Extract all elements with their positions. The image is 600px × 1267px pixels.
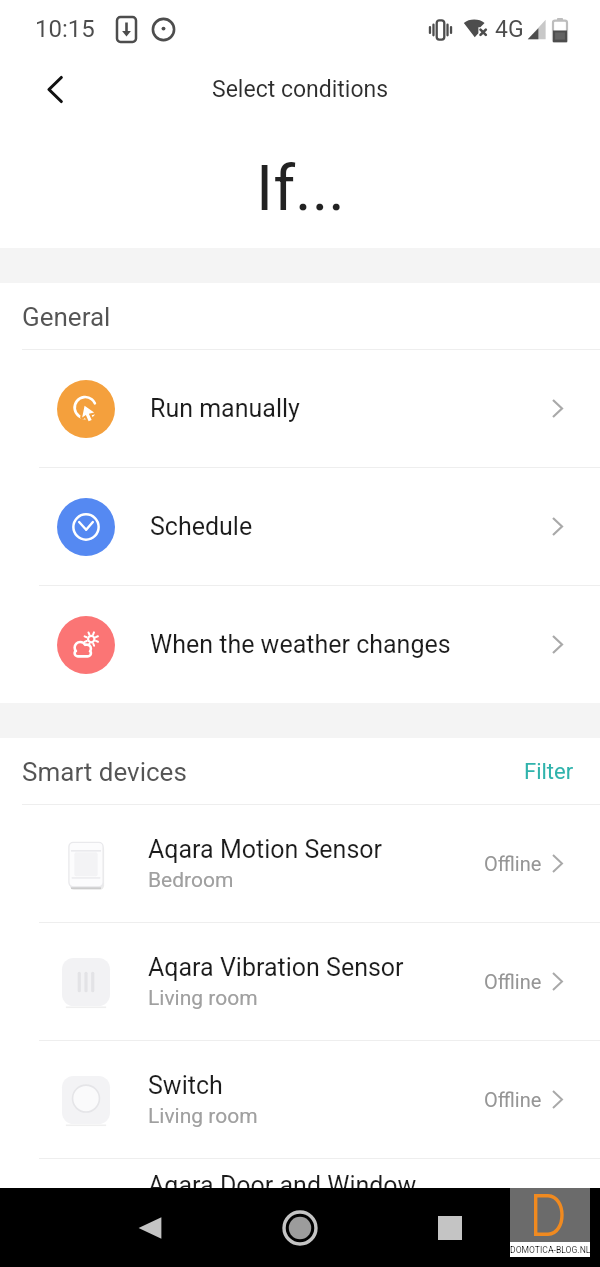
staticText: Run manually <box>150 394 300 423</box>
button[interactable]: Back <box>118 1196 182 1260</box>
staticText: Schedule <box>150 512 253 541</box>
staticText: Bedroom <box>148 868 234 893</box>
button[interactable]: Switch <box>0 1041 600 1158</box>
button[interactable]: Back <box>28 62 82 116</box>
staticText: Living room <box>148 1104 258 1129</box>
button[interactable]: Aqara Vibration Sensor <box>0 923 600 1040</box>
button[interactable]: Recent apps <box>418 1196 482 1260</box>
staticText: If... <box>256 152 345 226</box>
button[interactable]: Home <box>268 1196 332 1260</box>
staticText: General <box>22 302 111 332</box>
button[interactable]: Aqara Motion Sensor <box>0 805 600 922</box>
staticText: Aqara Door and Window <box>148 1171 417 1200</box>
staticText: When the weather changes <box>150 630 451 659</box>
staticText: Offline <box>484 970 542 993</box>
button[interactable]: Schedule <box>0 468 600 585</box>
button[interactable]: Filter <box>498 745 600 799</box>
staticText: 10:15 <box>35 15 95 43</box>
staticText: 4G <box>495 16 524 43</box>
staticText: Offline <box>484 852 542 875</box>
button[interactable]: When the weather changes <box>0 586 600 703</box>
button[interactable]: Run manually <box>0 350 600 467</box>
staticText: Offline <box>484 1088 542 1111</box>
staticText: Aqara Vibration Sensor <box>148 953 404 982</box>
staticText: Switch <box>148 1071 223 1100</box>
staticText: DOMOTICA-BLOG.NL <box>510 1245 590 1255</box>
staticText: Select conditions <box>212 76 389 103</box>
staticText: Aqara Motion Sensor <box>148 835 383 864</box>
staticText: Smart devices <box>22 757 187 787</box>
staticText: Living room <box>148 986 258 1011</box>
staticText: Filter <box>524 759 574 785</box>
